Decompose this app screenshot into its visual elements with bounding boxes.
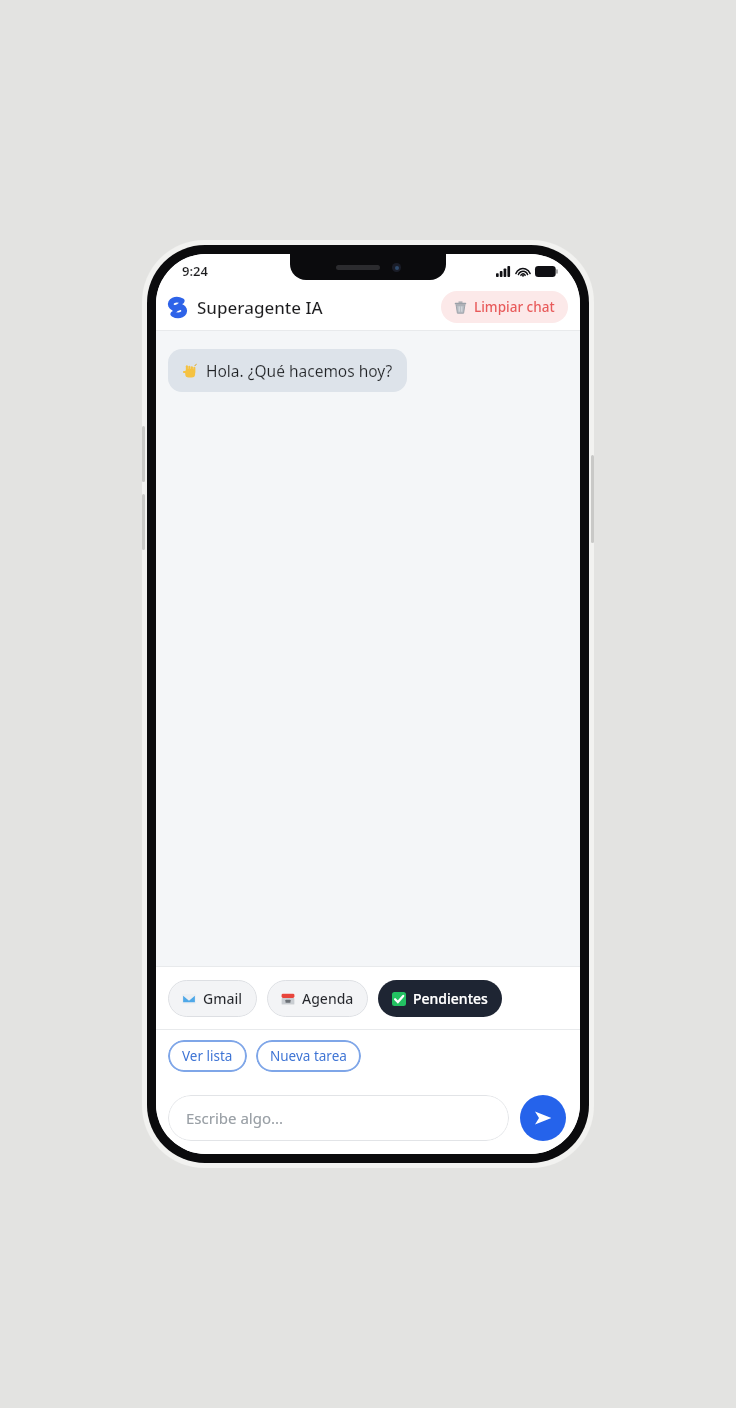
staticText: Agenda [302,989,354,1008]
staticText: Escribe algo... [186,1108,284,1128]
staticText: Limpiar chat [474,298,555,316]
button[interactable]: Agenda [267,980,368,1017]
button[interactable]: Enviar mensaje [520,1095,566,1141]
button[interactable]: Gmail [168,980,257,1017]
staticText: Gmail [203,989,243,1008]
staticText: 9:24 [182,262,208,280]
button[interactable]: Hola. ¿Qué hacemos hoy? [168,349,407,392]
button[interactable]: Pendientes [378,980,502,1017]
staticText: Superagente IA [197,296,323,319]
button[interactable]: Nueva tarea [256,1040,361,1072]
button[interactable]: Limpiar chat [441,291,568,323]
staticText: Hola. ¿Qué hacemos hoy? [206,360,393,381]
staticText: Ver lista [182,1047,233,1065]
button[interactable]: Ver lista [168,1040,247,1072]
button[interactable]: Escribe algo... [168,1095,509,1141]
staticText: Pendientes [413,989,488,1008]
staticText: Nueva tarea [270,1047,347,1065]
